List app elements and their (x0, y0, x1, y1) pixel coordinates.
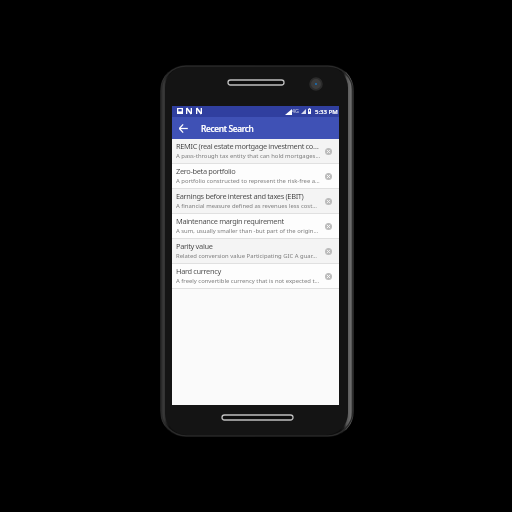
staticText: 4G (292, 107, 299, 114)
button[interactable]: Back (172, 117, 194, 139)
button[interactable]: Remove (321, 264, 339, 288)
staticText: A freely convertible currency that is no… (176, 277, 320, 285)
staticText: Earnings before interest and taxes (EBIT… (176, 191, 304, 201)
button[interactable]: REMIC (real estate mortgage investment c… (172, 139, 339, 163)
staticText: REMIC (real estate mortgage investment c… (176, 141, 319, 151)
button[interactable]: Parity value (172, 239, 339, 263)
staticText: A financial measure defined as revenues … (176, 202, 317, 210)
button[interactable]: Remove (321, 164, 339, 188)
staticText: Hard currency (176, 266, 221, 276)
button[interactable]: Maintenance margin requirement (172, 214, 339, 238)
staticText: Parity value (176, 241, 213, 251)
button[interactable]: Zero-beta portfolio (172, 164, 339, 188)
button[interactable]: Hard currency (172, 264, 339, 288)
staticText: Related conversion value Participating G… (176, 252, 317, 260)
staticText: Maintenance margin requirement (176, 216, 284, 226)
staticText: Recent Search (201, 123, 254, 134)
staticText: 5:33 PM (315, 108, 338, 116)
staticText: A pass-through tax entity that can hold … (176, 152, 321, 160)
button[interactable]: Remove (321, 214, 339, 238)
button[interactable]: Earnings before interest and taxes (EBIT… (172, 189, 339, 213)
button[interactable]: Remove (321, 139, 339, 163)
button[interactable]: Remove (321, 239, 339, 263)
staticText: A sum, usually smaller than -but part of… (176, 227, 319, 235)
staticText: Zero-beta portfolio (176, 166, 236, 176)
button[interactable]: Remove (321, 189, 339, 213)
staticText: A portfolio constructed to represent the… (176, 177, 320, 185)
